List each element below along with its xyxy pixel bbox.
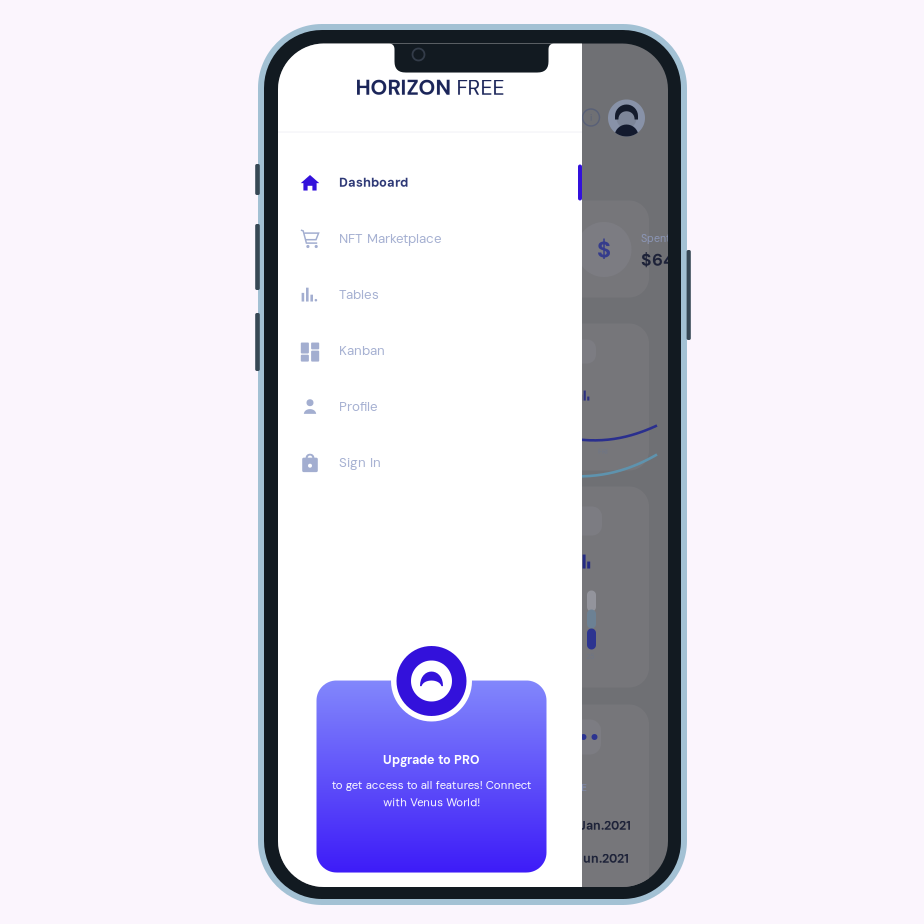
button[interactable]: Profile [278,378,582,434]
button[interactable]: NFT Marketplace [278,210,582,266]
button[interactable]: Upgrade to PRO [316,640,546,872]
button[interactable]: Information [576,102,606,132]
staticText: Sign In [339,454,381,471]
staticText: Profile [339,398,378,415]
staticText: Kanban [339,342,385,359]
button[interactable]: Profile [608,99,645,136]
button[interactable]: Kanban [278,322,582,378]
staticText: $642.39 [641,248,709,271]
staticText: Spent [641,231,670,245]
staticText: NFT Marketplace [339,230,442,247]
staticText: Dashboard [339,174,408,191]
staticText: to get access to all features! Connect w… [331,778,531,810]
staticText: DATE [563,781,587,794]
staticText: i [590,111,592,124]
staticText: Upgrade to PRO [383,751,480,768]
button[interactable]: Dashboard [278,154,582,210]
staticText: HORIZON [355,74,456,101]
button[interactable]: Tables [278,266,582,322]
staticText: 12.Jun.2021 [561,850,629,866]
staticText: Tables [339,286,379,303]
staticText: FREE [456,74,504,101]
staticText: $ [597,234,611,265]
button[interactable]: Sign In [278,434,582,490]
staticText: 24.Jan.2021 [561,817,631,833]
